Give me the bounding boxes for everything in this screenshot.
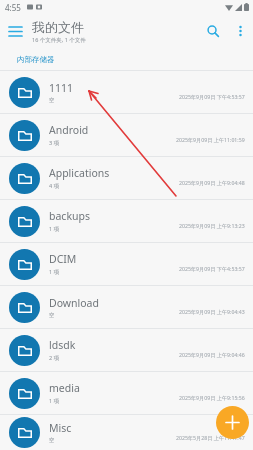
staticText: DCIM (49, 252, 77, 266)
staticText: 4 项 (49, 182, 60, 190)
button[interactable]: ldsdk (0, 329, 253, 371)
staticText: Misc (49, 421, 72, 435)
button[interactable]: DCIM (0, 243, 253, 285)
button[interactable]: Applications (0, 157, 253, 199)
staticText: Android (49, 123, 89, 137)
button[interactable]: Add (216, 406, 249, 439)
button[interactable]: 1111 (0, 71, 253, 113)
staticText: 1 项 (49, 268, 60, 276)
staticText: 16 个文件夹, 1 个文件 (32, 36, 86, 44)
button[interactable]: Search (199, 17, 227, 45)
staticText: 内部存储器 (17, 55, 55, 64)
staticText: 2025年9月09日 上午9:04:48 (179, 179, 245, 186)
button[interactable]: backups (0, 200, 253, 242)
staticText: media (49, 381, 80, 395)
staticText: 2025年5月28日 上午11:41:47 (176, 434, 245, 441)
staticText: 空 (49, 312, 55, 319)
staticText: 2025年9月09日 上午9:04:43 (179, 308, 245, 315)
staticText: Applications (49, 166, 110, 180)
staticText: Download (49, 296, 99, 310)
button[interactable]: More options (227, 18, 253, 44)
button[interactable]: media (0, 372, 253, 414)
button[interactable]: Misc (0, 415, 253, 450)
staticText: 空 (49, 437, 55, 444)
staticText: ldsdk (49, 338, 76, 352)
staticText: 2025年9月09日 上午9:15:56 (179, 394, 245, 401)
staticText: 2 项 (49, 354, 60, 362)
staticText: 我的文件 (32, 19, 84, 35)
staticText: 2025年9月09日 上午9:13:23 (179, 222, 245, 229)
staticText: 2025年9月09日 上午11:01:59 (176, 136, 245, 143)
staticText: 2025年9月09日 下午4:53:57 (179, 93, 245, 100)
staticText: 2025年9月09日 下午4:53:57 (179, 265, 245, 272)
staticText: 3 项 (49, 139, 60, 147)
staticText: 2025年9月09日 上午9:04:46 (179, 351, 245, 358)
staticText: backups (49, 209, 90, 223)
button[interactable]: Download (0, 286, 253, 328)
staticText: 1 项 (49, 397, 60, 405)
button[interactable]: Open navigation drawer (2, 18, 28, 44)
button[interactable]: Android (0, 114, 253, 156)
staticText: 4:55 (5, 2, 21, 13)
staticText: 1111 (49, 81, 74, 95)
staticText: 1 项 (49, 225, 60, 233)
staticText: 空 (49, 97, 55, 104)
button[interactable]: 内部存储器 (17, 55, 55, 64)
